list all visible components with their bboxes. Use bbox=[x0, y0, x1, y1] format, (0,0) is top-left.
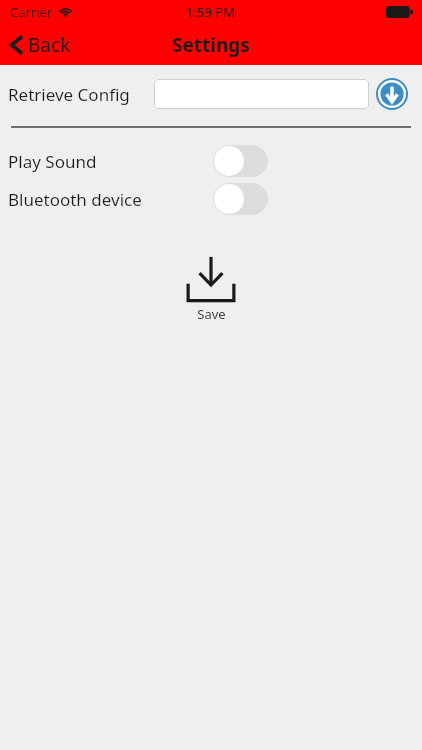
staticText: Back bbox=[28, 32, 71, 58]
staticText: 1:59 PM bbox=[186, 3, 236, 21]
button[interactable]: Bluetooth device toggle, off bbox=[213, 183, 268, 215]
button[interactable]: Save bbox=[179, 248, 243, 329]
button[interactable] bbox=[154, 79, 369, 109]
staticText: Carrier bbox=[10, 3, 53, 21]
staticText: Save bbox=[197, 305, 226, 323]
staticText: Play Sound bbox=[8, 150, 97, 173]
staticText: Bluetooth device bbox=[8, 188, 142, 211]
button[interactable]: Back bbox=[0, 28, 83, 62]
staticText: Retrieve Config bbox=[8, 83, 130, 106]
button[interactable]: Play Sound toggle, off bbox=[213, 145, 268, 177]
staticText: Settings bbox=[172, 32, 250, 58]
button[interactable]: Retrieve configuration bbox=[375, 77, 409, 111]
